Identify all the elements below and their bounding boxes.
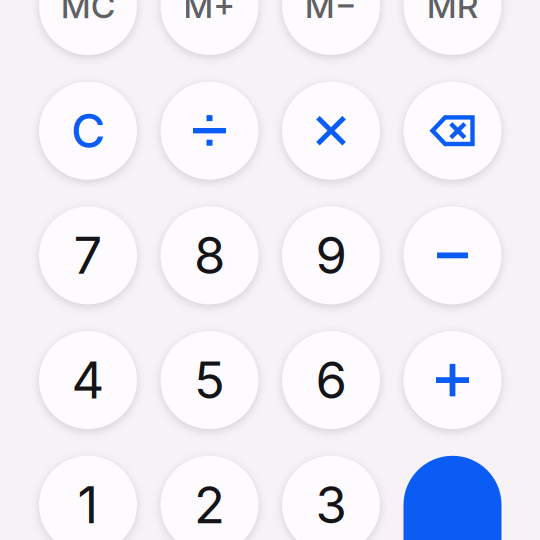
button[interactable]: Multiply [282,82,380,180]
staticText: 4 [71,349,104,411]
button[interactable]: Memory add [160,0,258,55]
staticText: 8 [194,225,225,286]
button[interactable]: Memory recall [403,0,501,55]
button[interactable] [160,456,258,540]
button[interactable]: Equals [403,456,501,540]
staticText: MC [61,0,115,26]
button[interactable] [39,206,137,304]
button[interactable] [282,206,380,304]
staticText: 6 [315,349,346,411]
staticText: MR [427,0,478,26]
staticText: C [71,102,105,159]
button[interactable]: Clear [39,82,137,180]
button[interactable]: Divide [160,82,258,180]
button[interactable] [282,456,380,540]
button[interactable] [39,331,137,429]
staticText: 7 [73,225,102,286]
staticText: 5 [194,349,225,411]
button[interactable] [39,456,137,540]
button[interactable]: Memory clear [39,0,137,55]
staticText: 3 [315,474,346,535]
staticText: M− [305,0,357,26]
button[interactable]: Delete [403,82,501,180]
staticText: 2 [194,474,225,535]
button[interactable]: Subtract [403,206,501,304]
button[interactable] [160,206,258,304]
staticText: M+ [183,0,235,26]
button[interactable] [282,331,380,429]
staticText: 9 [315,225,346,286]
button[interactable]: Add [403,331,501,429]
button[interactable] [160,331,258,429]
button[interactable]: Memory subtract [282,0,380,55]
staticText: 1 [77,474,98,535]
